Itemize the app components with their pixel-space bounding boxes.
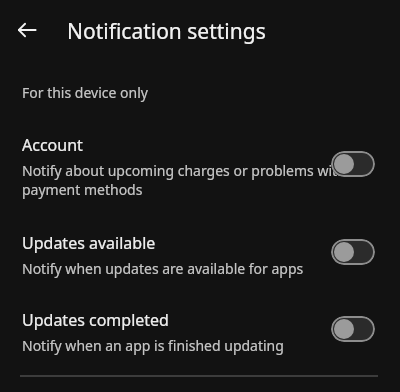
button[interactable] [0,301,400,351]
staticText: Notify when an app is finished updating [22,336,284,355]
staticText: payment methods [22,180,143,199]
button[interactable]: Toggle Updates available [331,239,375,265]
button[interactable] [0,224,400,274]
staticText: Notification settings [67,17,266,46]
staticText: Updates completed [22,309,169,331]
button[interactable]: Toggle Updates completed [331,316,375,342]
staticText: Notify when updates are available for ap… [22,259,304,278]
staticText: Updates available [22,232,156,254]
button[interactable]: Back [7,10,47,50]
button[interactable]: Toggle Account [331,151,375,177]
staticText: Notify about upcoming charges or problem… [22,161,346,180]
staticText: Account [22,134,83,156]
button[interactable] [0,126,400,196]
staticText: For this device only [22,83,148,102]
